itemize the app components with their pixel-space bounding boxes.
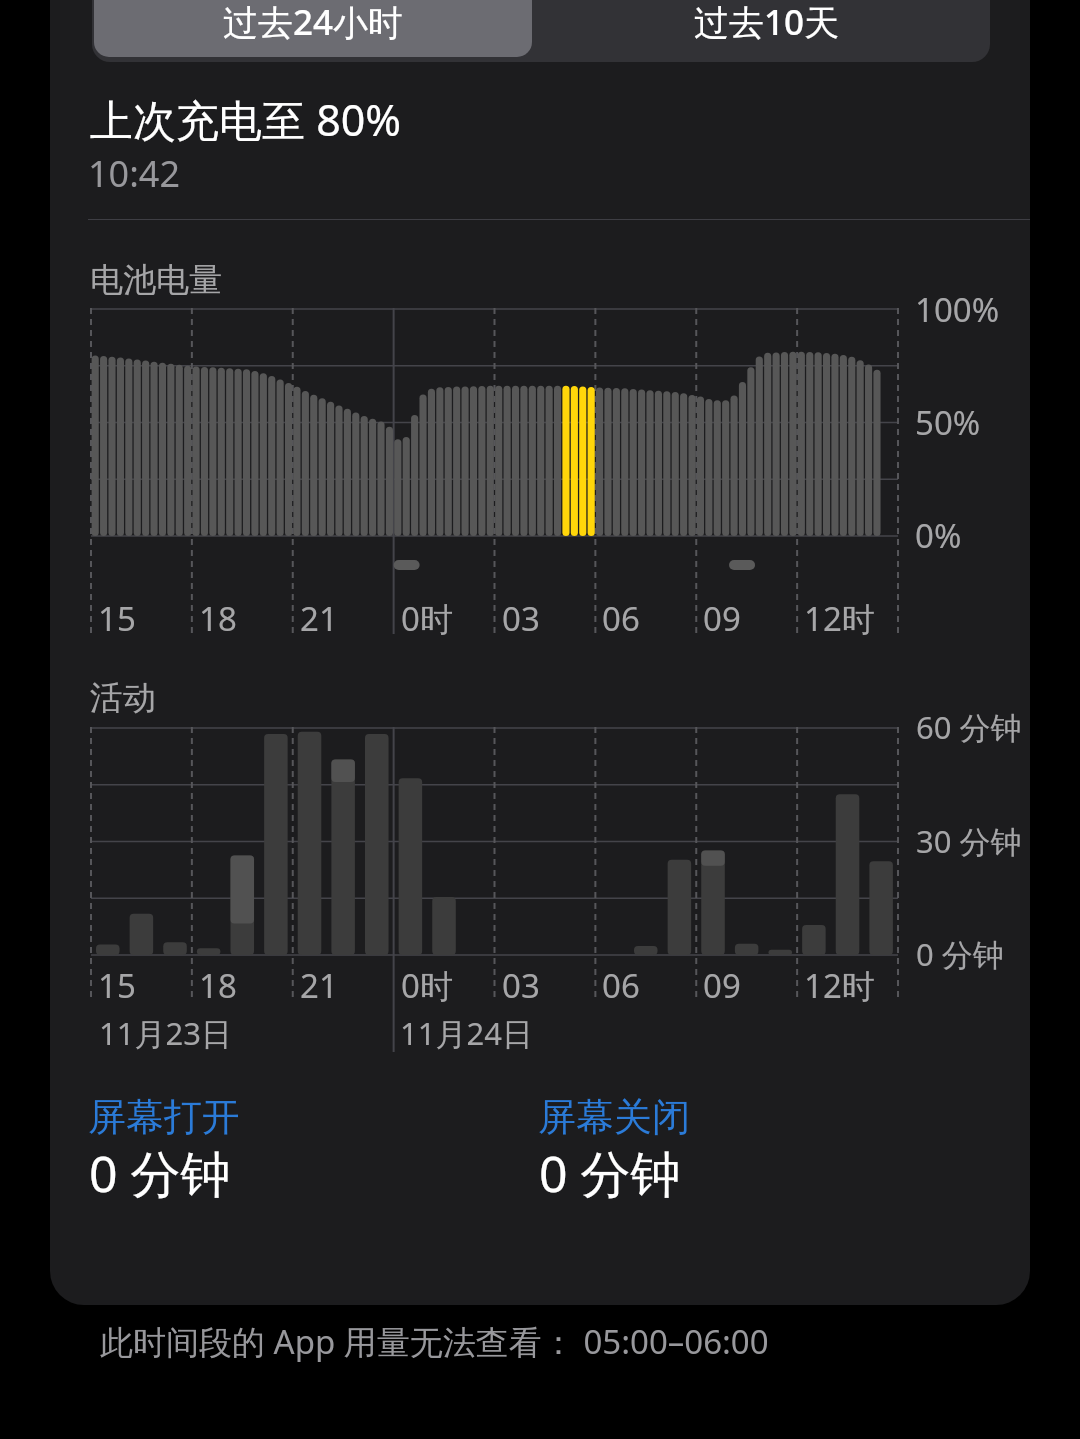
staticText: 过去24小时 xyxy=(223,0,404,46)
staticText: 电池电量 xyxy=(90,259,222,301)
staticText: 11月24日 xyxy=(400,1012,533,1054)
staticText: 09 xyxy=(703,963,741,1008)
staticText: 60 分钟 xyxy=(916,706,1022,748)
staticText: 10:42 xyxy=(88,149,181,198)
staticText: 活动 xyxy=(90,677,156,719)
staticText: 0 分钟 xyxy=(539,1139,681,1203)
staticText: 21 xyxy=(300,596,338,641)
staticText: 过去10天 xyxy=(694,0,840,46)
button[interactable]: 屏幕关闭 xyxy=(530,1086,960,1198)
staticText: 0时 xyxy=(401,596,453,641)
staticText: 15 xyxy=(98,596,136,641)
staticText: 50% xyxy=(915,400,981,445)
staticText: 18 xyxy=(199,963,237,1008)
staticText: 06 xyxy=(602,963,640,1008)
staticText: 03 xyxy=(502,596,540,641)
staticText: 11月23日 xyxy=(99,1012,232,1054)
staticText: 21 xyxy=(300,963,338,1008)
staticText: 100% xyxy=(915,287,1000,332)
staticText: 09 xyxy=(703,596,741,641)
staticText: 0 分钟 xyxy=(916,933,1004,975)
staticText: 12时 xyxy=(804,963,875,1008)
staticText: 屏幕关闭 xyxy=(538,1093,690,1141)
staticText: 15 xyxy=(98,963,136,1008)
staticText: 0时 xyxy=(401,963,453,1008)
button[interactable]: 过去10天 xyxy=(548,0,986,57)
staticText: 此时间段的 App 用量无法查看： 05:00–06:00 xyxy=(100,1319,769,1364)
staticText: 12时 xyxy=(804,596,875,641)
button[interactable]: 屏幕打开 xyxy=(80,1086,510,1198)
staticText: 18 xyxy=(199,596,237,641)
staticText: 0 分钟 xyxy=(89,1139,231,1203)
button[interactable]: 过去24小时 xyxy=(94,0,532,57)
staticText: 03 xyxy=(502,963,540,1008)
staticText: 06 xyxy=(602,596,640,641)
staticText: 0% xyxy=(915,513,962,558)
staticText: 屏幕打开 xyxy=(88,1093,240,1141)
staticText: 上次充电至 80% xyxy=(90,90,402,149)
staticText: 30 分钟 xyxy=(916,820,1022,862)
